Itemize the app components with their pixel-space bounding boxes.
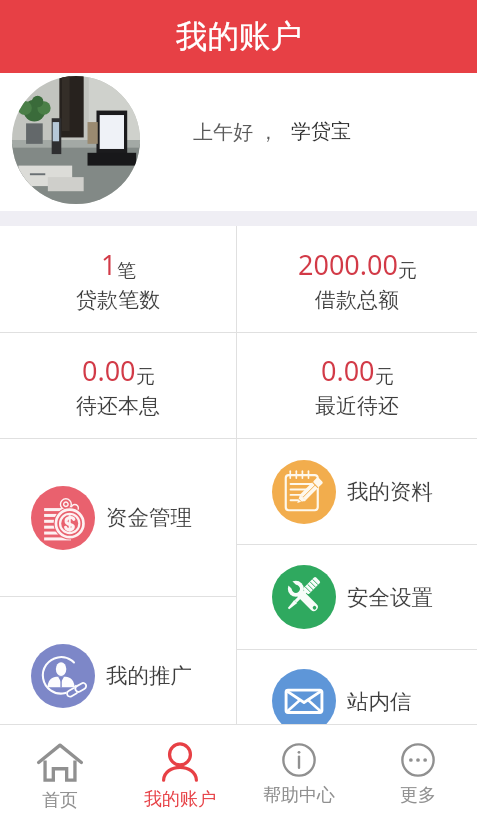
- button[interactable]: 我的账户: [0, 0, 477, 73]
- staticText: 上午好 ，: [193, 118, 279, 145]
- button[interactable]: 我的账户: [120, 725, 239, 817]
- button[interactable]: 0.00: [237, 333, 477, 438]
- other: 帮助中心: [282, 743, 316, 777]
- other: 我的账户: [162, 743, 198, 781]
- staticText: 我的资料: [347, 478, 433, 505]
- staticText: 帮助中心: [263, 784, 335, 807]
- staticText: 我的账户: [176, 17, 302, 57]
- button[interactable]: 帮助中心: [239, 725, 358, 817]
- other: 首页: [37, 743, 83, 782]
- staticText: 首页: [42, 789, 78, 812]
- staticText: 贷款笔数: [76, 287, 160, 313]
- button[interactable]: 2000.00: [237, 226, 477, 332]
- button[interactable]: 安全设置: [237, 545, 477, 649]
- staticText: 元: [398, 259, 417, 283]
- staticText: 待还本息: [76, 393, 160, 419]
- staticText: 最近待还: [315, 393, 399, 419]
- staticText: 更多: [400, 784, 436, 807]
- staticText: 我的账户: [144, 788, 216, 811]
- staticText: 安全设置: [347, 584, 433, 611]
- staticText: 元: [375, 365, 394, 389]
- button[interactable]: 站内信: [237, 646, 477, 724]
- staticText: 我的推广: [106, 662, 192, 689]
- button[interactable]: 0.00: [0, 333, 236, 438]
- other: 更多: [401, 743, 435, 777]
- button[interactable]: 我的资料: [237, 439, 477, 544]
- staticText: 笔: [117, 259, 136, 283]
- staticText: 元: [136, 365, 155, 389]
- staticText: 0.00: [321, 352, 375, 389]
- button[interactable]: 首页: [0, 725, 120, 817]
- staticText: 0.00: [82, 352, 136, 389]
- staticText: 资金管理: [106, 504, 192, 531]
- staticText: 2000.00: [298, 246, 398, 283]
- staticText: 1: [101, 246, 117, 283]
- button[interactable]: 1: [0, 226, 236, 332]
- button[interactable]: 上午好 ，: [0, 73, 477, 211]
- button[interactable]: 资金管理: [0, 439, 236, 596]
- staticText: 借款总额: [315, 287, 399, 313]
- staticText: 学贷宝: [291, 119, 351, 144]
- button[interactable]: 我的推广: [0, 597, 236, 724]
- staticText: 站内信: [347, 688, 412, 715]
- button[interactable]: 更多: [358, 725, 477, 817]
